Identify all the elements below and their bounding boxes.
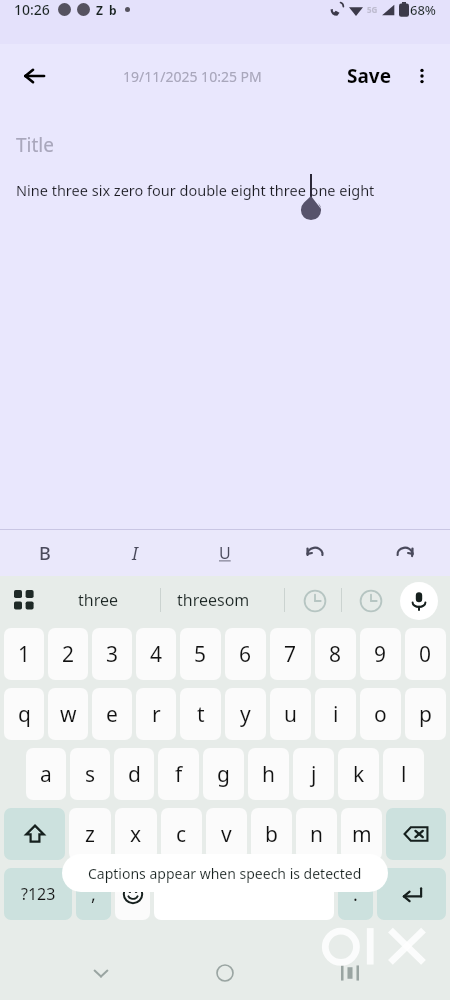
button[interactable]: 0 xyxy=(405,628,446,680)
button[interactable]: v xyxy=(206,808,247,860)
staticText: p xyxy=(419,700,432,729)
staticText: g xyxy=(217,760,230,789)
button[interactable]: Back xyxy=(77,949,125,997)
button[interactable]: Recents xyxy=(326,949,374,997)
staticText: 9 xyxy=(374,640,387,669)
staticText: Save xyxy=(347,63,392,89)
button[interactable]: n xyxy=(296,808,337,860)
button[interactable]: p xyxy=(405,688,446,740)
button[interactable]: Underline xyxy=(180,530,270,576)
button[interactable]: Comma xyxy=(76,868,111,920)
staticText: 1 xyxy=(18,640,31,669)
staticText: r xyxy=(152,700,161,729)
button[interactable]: i xyxy=(315,688,356,740)
staticText: z xyxy=(85,820,95,849)
staticText: , xyxy=(91,882,96,907)
staticText: b xyxy=(265,820,278,849)
button[interactable]: u xyxy=(270,688,311,740)
button[interactable]: Save xyxy=(339,57,400,95)
button[interactable]: l xyxy=(383,748,424,800)
button[interactable]: Emoji xyxy=(115,868,150,920)
button[interactable]: 9 xyxy=(360,628,401,680)
staticText: 4 xyxy=(150,640,163,669)
button[interactable]: 4 xyxy=(136,628,176,680)
button[interactable]: e xyxy=(92,688,132,740)
button[interactable]: c xyxy=(161,808,202,860)
staticText: Z xyxy=(96,2,103,18)
staticText: j xyxy=(311,760,317,789)
button[interactable]: d xyxy=(114,748,154,800)
staticText: h xyxy=(262,760,275,789)
button[interactable]: g xyxy=(203,748,244,800)
button[interactable]: ?123 xyxy=(4,868,72,920)
staticText: v xyxy=(221,820,232,849)
staticText: o xyxy=(374,700,387,729)
button[interactable]: Clock translate xyxy=(302,588,328,614)
staticText: t xyxy=(197,700,205,729)
button[interactable]: r xyxy=(136,688,176,740)
button[interactable]: Redo xyxy=(360,530,450,576)
staticText: m xyxy=(352,820,372,849)
staticText: U xyxy=(219,542,231,564)
staticText: 6 xyxy=(239,640,252,669)
staticText: Title xyxy=(16,132,54,158)
button[interactable]: b xyxy=(251,808,292,860)
button[interactable]: Keyboard toolbar xyxy=(12,588,36,612)
button[interactable]: 1 xyxy=(4,628,44,680)
staticText: b xyxy=(109,2,117,18)
staticText: e xyxy=(106,700,118,729)
staticText: a xyxy=(40,760,52,789)
button[interactable]: w xyxy=(48,688,88,740)
button[interactable]: threesom xyxy=(177,589,250,611)
button[interactable]: Space xyxy=(154,868,334,920)
button[interactable]: Italic xyxy=(90,530,180,576)
button[interactable]: More options xyxy=(400,54,444,98)
button[interactable]: a xyxy=(26,748,66,800)
staticText: 10:26 xyxy=(14,0,50,19)
button[interactable]: Backspace xyxy=(386,808,446,860)
button[interactable]: Undo xyxy=(270,530,360,576)
button[interactable]: s xyxy=(70,748,110,800)
button[interactable]: 2 xyxy=(48,628,88,680)
staticText: Nine three six zero four double eight th… xyxy=(16,180,450,200)
button[interactable]: 7 xyxy=(270,628,311,680)
button[interactable]: k xyxy=(338,748,379,800)
staticText: i xyxy=(333,700,339,729)
staticText: 2 xyxy=(62,640,75,669)
button[interactable]: B xyxy=(0,530,90,576)
button[interactable]: Voice input xyxy=(400,582,438,620)
button[interactable]: 6 xyxy=(225,628,266,680)
button[interactable]: y xyxy=(225,688,266,740)
staticText: Captions appear when speech is detected xyxy=(88,864,362,883)
button[interactable]: Shift xyxy=(4,808,65,860)
button[interactable]: 3 xyxy=(92,628,132,680)
staticText: 5 xyxy=(194,640,207,669)
staticText: c xyxy=(176,820,187,849)
button[interactable]: Back xyxy=(10,52,58,100)
button[interactable]: m xyxy=(341,808,382,860)
button[interactable]: 8 xyxy=(315,628,356,680)
button[interactable]: Recent xyxy=(358,588,384,614)
staticText: w xyxy=(60,700,77,729)
button[interactable]: Home xyxy=(201,949,249,997)
staticText: x xyxy=(130,820,142,849)
staticText: f xyxy=(175,760,183,789)
button[interactable]: h xyxy=(248,748,289,800)
button[interactable]: f xyxy=(158,748,199,800)
button[interactable]: z xyxy=(69,808,111,860)
button[interactable]: t xyxy=(180,688,221,740)
button[interactable]: x xyxy=(115,808,157,860)
staticText: 5G xyxy=(367,4,378,15)
staticText: . xyxy=(353,882,358,907)
staticText: s xyxy=(85,760,96,789)
button[interactable]: q xyxy=(4,688,44,740)
staticText: I xyxy=(132,541,138,566)
button[interactable]: j xyxy=(293,748,334,800)
button[interactable]: 5 xyxy=(180,628,221,680)
button[interactable]: Period xyxy=(338,868,373,920)
button[interactable]: Hide keyboard xyxy=(76,946,450,1000)
button[interactable]: o xyxy=(360,688,401,740)
staticText: ?123 xyxy=(21,883,56,905)
button[interactable]: Enter xyxy=(377,868,446,920)
button[interactable]: three xyxy=(78,589,119,611)
